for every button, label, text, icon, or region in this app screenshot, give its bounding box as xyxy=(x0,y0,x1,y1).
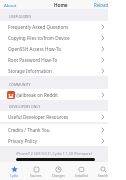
button[interactable]: Credits / Thank You xyxy=(0,124,108,135)
staticText: Frequently Asked Questions xyxy=(8,24,69,30)
other: Sources xyxy=(33,166,40,173)
button[interactable]: About xyxy=(0,0,20,9)
staticText: USER GUIDES xyxy=(9,14,32,19)
staticText: Storage Information xyxy=(8,68,52,74)
staticText: Privacy Policy xyxy=(8,138,37,144)
button[interactable]: r/jailbreak on Reddit xyxy=(0,89,108,100)
staticText: r/jailbreak on Reddit xyxy=(14,92,58,98)
button[interactable]: OpenSSH Access How-To xyxy=(0,43,108,54)
button[interactable]: Storage Information xyxy=(0,65,108,76)
button[interactable]: Frequently Asked Questions xyxy=(0,21,108,32)
staticText: Cydia xyxy=(10,174,18,178)
staticText: iPhone7,2 (iOS 9.0.1), Cydia 1.1.30 (Fir… xyxy=(0,151,108,156)
staticText: Home xyxy=(54,2,68,8)
staticText: Root Password How-To xyxy=(8,57,58,63)
button[interactable]: Root Password How-To xyxy=(0,54,108,65)
other: Search xyxy=(100,166,107,173)
staticText: COMMUNITY xyxy=(9,82,31,87)
staticText: About xyxy=(4,2,17,7)
button[interactable]: Sources xyxy=(25,162,47,180)
button[interactable]: Changes xyxy=(47,162,69,180)
button[interactable]: Copying Files to/from Device xyxy=(0,32,108,43)
staticText: Changes xyxy=(52,174,65,178)
button[interactable]: Cydia xyxy=(3,162,25,180)
other: Cydia xyxy=(11,166,18,173)
staticText: Useful Developer Resources xyxy=(8,114,69,120)
staticText: Credits / Thank You xyxy=(8,127,50,133)
other: Changes xyxy=(55,166,62,173)
button[interactable]: Search xyxy=(92,162,114,180)
staticText: Search xyxy=(98,174,108,178)
staticText: Reload xyxy=(94,2,109,7)
other: Installed xyxy=(78,166,85,173)
staticText: OpenSSH Access How-To xyxy=(8,46,62,52)
staticText: Sources xyxy=(30,174,42,178)
button[interactable]: Privacy Policy xyxy=(0,135,108,146)
button[interactable]: Reload xyxy=(91,0,112,9)
button[interactable]: Useful Developer Resources xyxy=(0,111,108,122)
staticText: Copying Files to/from Device xyxy=(8,35,70,41)
button[interactable]: Installed xyxy=(70,162,92,180)
staticText: DEVELOPERS ONLY xyxy=(9,104,41,109)
staticText: Installed xyxy=(75,174,88,178)
